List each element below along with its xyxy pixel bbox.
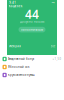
button[interactable]: Все: [51, 44, 55, 48]
staticText: Все: [51, 44, 55, 48]
staticText: Пополнить счёт: [21, 28, 43, 31]
staticText: Кошелёк: [9, 4, 23, 8]
staticText: Ежедневный бонус: [8, 57, 34, 61]
button[interactable]: Яблочный сок: [0, 63, 64, 71]
staticText: История: [9, 44, 21, 48]
staticText: Яблочный сок: [8, 65, 29, 69]
button[interactable]: Кругосветное путеш.: [0, 71, 64, 79]
button[interactable]: Ежедневный бонус: [0, 55, 64, 63]
staticText: +1,50: [52, 57, 61, 61]
staticText: ▪▪ ▮: [52, 2, 55, 3]
button[interactable]: Пополнить счёт: [18, 27, 45, 32]
staticText: Кругосветное путеш.: [8, 73, 35, 77]
staticText: Доступно на счёте: [20, 20, 44, 23]
staticText: 9:41: [9, 1, 16, 4]
staticText: 44: [25, 6, 39, 22]
